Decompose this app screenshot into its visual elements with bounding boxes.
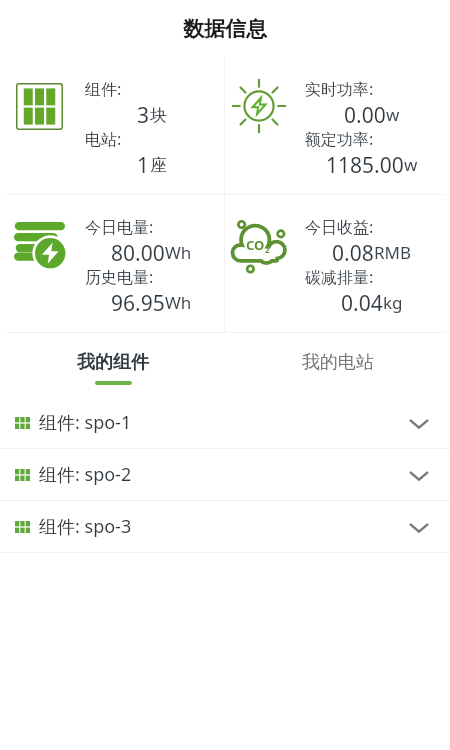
staticText: CO	[246, 236, 265, 254]
staticText: 历史电量:	[85, 266, 154, 288]
staticText: 1185.00	[326, 151, 404, 176]
staticText: 今日电量:	[85, 216, 154, 238]
staticText: 1	[137, 151, 150, 176]
button[interactable]: 我的电站	[225, 333, 450, 397]
staticText: 0.04	[341, 289, 383, 314]
button[interactable]: 组件:	[5, 57, 224, 176]
button[interactable]: CO	[225, 195, 445, 314]
staticText: 电站:	[85, 128, 122, 150]
button[interactable]: 组件: spo-2	[0, 449, 450, 500]
staticText: RMB	[374, 241, 412, 264]
staticText: 2	[265, 244, 270, 255]
staticText: 组件: spo-2	[39, 462, 132, 487]
button[interactable]: 今日电量:	[5, 195, 224, 314]
other: Expand	[410, 518, 428, 536]
staticText: 0.00	[344, 101, 386, 126]
staticText: 96.95	[111, 289, 165, 314]
staticText: 今日收益:	[305, 216, 374, 238]
staticText: 我的电站	[302, 351, 374, 374]
staticText: 数据信息	[183, 16, 267, 42]
button[interactable]: 组件: spo-1	[0, 397, 450, 448]
staticText: 组件: spo-1	[39, 410, 132, 435]
staticText: 碳减排量:	[305, 266, 374, 288]
staticText: w	[404, 153, 418, 176]
staticText: 实时功率:	[305, 78, 374, 100]
other: Expand	[410, 466, 428, 484]
staticText: 我的组件	[77, 351, 149, 374]
staticText: 组件: spo-3	[39, 514, 132, 539]
staticText: w	[386, 103, 400, 126]
staticText: 组件:	[85, 78, 122, 100]
staticText: 座	[150, 155, 167, 176]
staticText: 0.08	[332, 239, 374, 264]
staticText: Wh	[165, 241, 192, 264]
staticText: Wh	[165, 291, 192, 314]
staticText: 3	[137, 101, 150, 126]
button[interactable]: 我的组件	[0, 333, 225, 397]
button[interactable]: 实时功率:	[225, 57, 445, 176]
button[interactable]: 组件: spo-3	[0, 501, 450, 552]
staticText: 块	[150, 105, 167, 126]
staticText: 额定功率:	[305, 128, 374, 150]
staticText: kg	[383, 291, 403, 314]
staticText: 80.00	[111, 239, 165, 264]
other: Expand	[410, 414, 428, 432]
